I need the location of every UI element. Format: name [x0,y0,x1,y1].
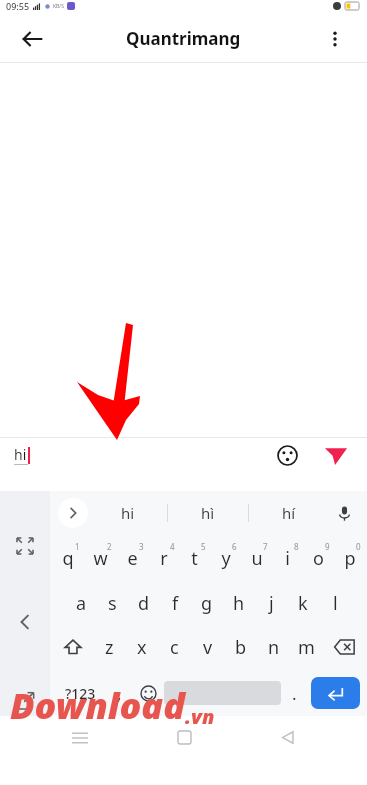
button[interactable]: Move keyboard left [8,605,42,639]
staticText: z [105,635,114,660]
staticText: hi [121,503,135,523]
button[interactable]: Home [161,716,207,759]
staticText: 4 [170,541,175,552]
button[interactable]: Floating keyboard [8,685,42,716]
button[interactable]: i [272,536,303,580]
staticText: g [201,591,213,616]
staticText: t [191,546,198,571]
staticText: u [251,546,263,571]
button[interactable]: More suggestions [58,498,88,528]
button[interactable]: Period [281,672,308,714]
staticText: q [62,546,74,571]
staticText: 9 [325,541,330,552]
button[interactable]: Emoji [271,439,303,471]
staticText: f [172,591,179,616]
staticText: o [313,546,324,571]
staticText: n [268,635,280,660]
staticText: d [138,591,150,616]
button[interactable]: j [255,582,287,624]
button[interactable]: ?123 [54,672,106,714]
staticText: , [117,682,122,705]
staticText: h [233,591,245,616]
button[interactable]: a [66,582,97,624]
staticText: 3 [139,541,144,552]
button[interactable]: More options [315,19,355,59]
button[interactable]: hì [168,491,248,535]
staticText: y [221,546,231,571]
staticText: hì [201,503,215,523]
button[interactable]: b [224,626,257,668]
staticText: 09:55 [6,0,30,12]
staticText: 7 [263,541,268,552]
staticText: w [93,546,108,571]
button[interactable]: Space [164,681,281,705]
button[interactable]: n [257,626,290,668]
button[interactable]: f [159,582,191,624]
button[interactable]: c [158,626,191,668]
button[interactable]: r [148,536,179,580]
staticText: 5 [201,541,206,552]
button[interactable]: Recent apps [57,716,103,759]
button[interactable]: l [319,582,351,624]
button[interactable]: v [191,626,224,668]
button[interactable]: hí [249,491,329,535]
button[interactable]: u [241,536,272,580]
button[interactable]: hi [88,491,167,535]
staticText: KB/S [53,3,64,10]
button[interactable]: m [290,626,323,668]
staticText: e [127,546,138,571]
staticText: v [203,635,213,660]
staticText: 0 [356,541,361,552]
staticText: Download [10,681,185,730]
staticText: i [285,546,290,571]
button[interactable]: h [223,582,255,624]
button[interactable]: Expand keyboard [8,529,42,563]
button[interactable]: Send [319,438,353,472]
staticText: l [333,591,338,616]
button[interactable]: e [116,536,148,580]
staticText: r [160,546,168,571]
button[interactable]: p [334,536,365,580]
button[interactable]: d [128,582,159,624]
staticText: s [108,591,117,616]
staticText: m [298,635,315,660]
button[interactable]: t [179,536,210,580]
button[interactable]: Shift [52,626,93,668]
button[interactable]: Enter [311,677,360,709]
button[interactable]: Back [12,19,52,59]
button[interactable]: x [125,626,158,668]
staticText: c [170,635,179,660]
staticText: Quantrimang [126,27,241,50]
staticText: hí [282,503,296,523]
button[interactable]: y [210,536,241,580]
staticText: hi [14,445,27,464]
button[interactable]: Comma [106,672,133,714]
staticText: p [344,546,356,571]
staticText: x [137,635,147,660]
staticText: b [235,635,247,660]
button[interactable]: g [191,582,223,624]
button[interactable]: z [93,626,125,668]
staticText: .vn [185,703,215,730]
staticText: a [76,591,87,616]
button[interactable]: k [287,582,319,624]
staticText: 2 [107,541,112,552]
button[interactable]: q [52,536,84,580]
staticText: k [298,591,308,616]
button[interactable]: w [84,536,116,580]
staticText: 1 [75,541,80,552]
staticText: ?123 [65,684,96,703]
button[interactable]: Back [264,716,310,759]
button[interactable]: Backspace [323,626,365,668]
button[interactable]: s [97,582,128,624]
staticText: j [269,591,274,616]
staticText: 8 [294,541,299,552]
button[interactable]: o [303,536,334,580]
staticText: . [292,682,297,705]
button[interactable]: Voice input [329,498,359,528]
staticText: 6 [232,541,237,552]
button[interactable]: Emoji keyboard [133,672,164,714]
